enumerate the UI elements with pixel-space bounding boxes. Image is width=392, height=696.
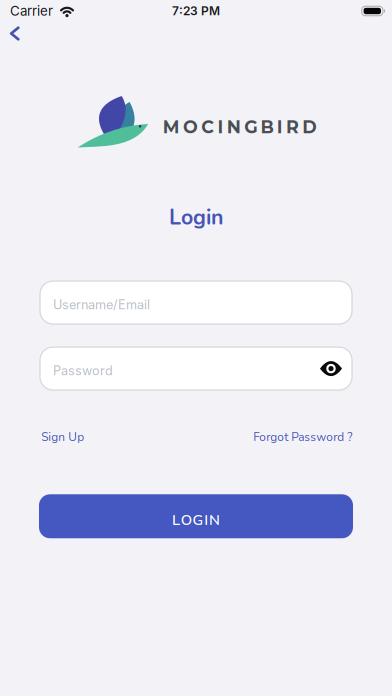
button[interactable]: Back bbox=[9, 27, 20, 40]
staticText: D bbox=[302, 116, 316, 138]
staticText: G bbox=[192, 510, 203, 530]
staticText: I bbox=[218, 116, 224, 138]
staticText: Username/Email bbox=[53, 297, 150, 312]
staticText: Login bbox=[169, 203, 223, 232]
staticText: O bbox=[183, 116, 198, 138]
button[interactable]: Forgot Password ? bbox=[253, 429, 352, 445]
staticText: R bbox=[286, 116, 299, 138]
button[interactable]: Show password bbox=[320, 361, 342, 377]
staticText: N bbox=[209, 510, 220, 530]
staticText: Carrier bbox=[10, 3, 53, 19]
staticText: N bbox=[227, 116, 241, 138]
staticText: G bbox=[244, 116, 257, 138]
staticText: L bbox=[172, 510, 180, 530]
staticText: O bbox=[181, 510, 192, 530]
button[interactable]: Password bbox=[40, 347, 352, 390]
staticText: Password bbox=[53, 363, 113, 378]
staticText: M bbox=[163, 116, 180, 138]
button[interactable]: Username/Email bbox=[40, 281, 352, 324]
staticText: Forgot Password ? bbox=[253, 429, 352, 445]
staticText: 7:23 PM bbox=[172, 4, 220, 18]
staticText: Sign Up bbox=[41, 429, 84, 445]
staticText: B bbox=[260, 116, 273, 138]
button[interactable]: Sign Up bbox=[41, 429, 84, 445]
staticText: I bbox=[204, 510, 208, 530]
staticText: C bbox=[201, 116, 214, 138]
staticText: I bbox=[277, 116, 283, 138]
button[interactable]: L bbox=[39, 494, 353, 538]
